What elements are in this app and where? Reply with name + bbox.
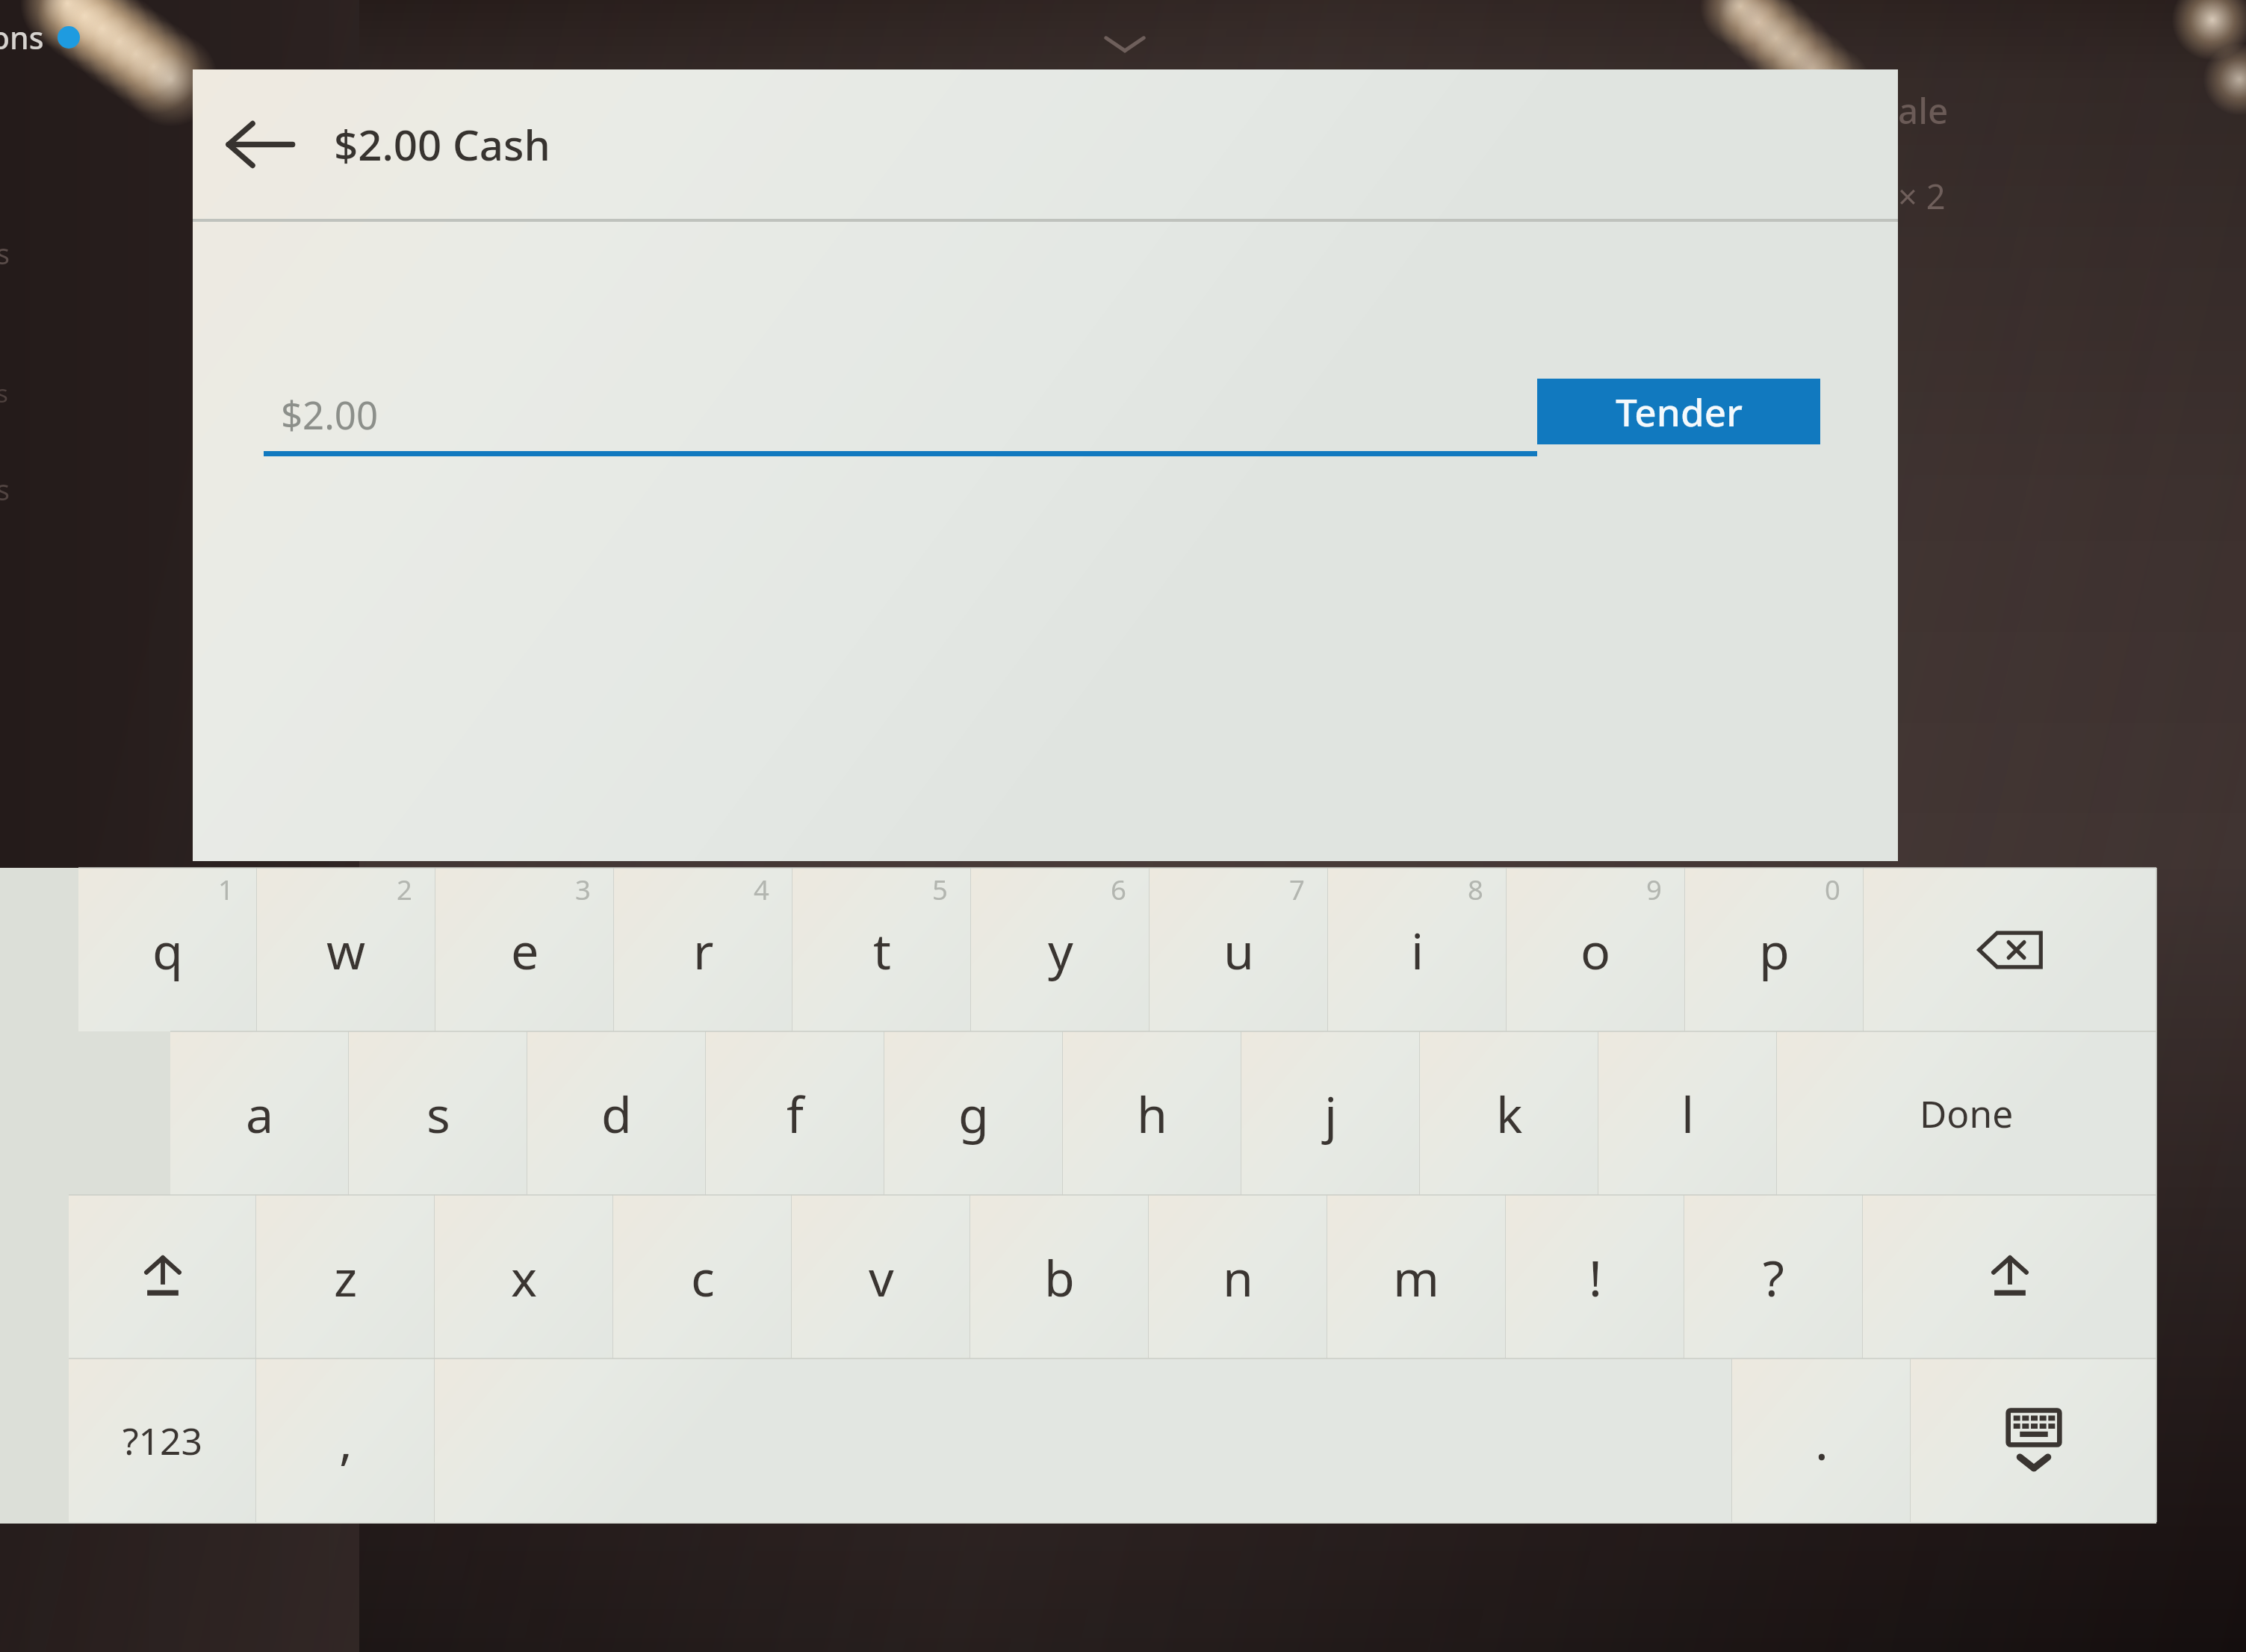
staticText: x — [511, 1243, 538, 1311]
staticText: 9 — [1646, 871, 1662, 908]
staticText: s — [0, 235, 10, 273]
button[interactable]: d — [527, 1031, 706, 1195]
button[interactable]: b — [970, 1195, 1149, 1358]
button[interactable]: Shift — [69, 1195, 256, 1358]
button[interactable]: 0 — [1685, 868, 1864, 1031]
staticText: ? — [1763, 1243, 1784, 1311]
staticText: b — [1044, 1243, 1075, 1311]
staticText: 8 — [1468, 871, 1483, 908]
staticText: r — [693, 916, 714, 984]
button[interactable]: s — [349, 1031, 527, 1195]
staticText: ?123 — [122, 1415, 202, 1466]
button[interactable]: g — [884, 1031, 1063, 1195]
button[interactable]: v — [792, 1195, 970, 1358]
staticText: 2 — [397, 871, 412, 908]
staticText: m — [1393, 1243, 1440, 1311]
button[interactable]: x — [435, 1195, 613, 1358]
button[interactable]: Done — [1777, 1031, 2156, 1195]
staticText: 5 — [932, 871, 948, 908]
button[interactable]: 5 — [792, 868, 971, 1031]
staticText: e — [511, 916, 539, 984]
staticText: d — [601, 1080, 632, 1147]
button[interactable]: ?123 — [69, 1358, 256, 1522]
staticText: Tender — [1616, 385, 1743, 438]
staticText: 3 — [575, 871, 591, 908]
staticText: v — [869, 1243, 894, 1311]
button[interactable]: Backspace — [1864, 868, 2156, 1031]
button[interactable]: n — [1149, 1195, 1327, 1358]
button[interactable]: Shift — [1863, 1195, 2156, 1358]
staticText: f — [787, 1080, 804, 1147]
button[interactable]: 6 — [971, 868, 1150, 1031]
button[interactable]: f — [706, 1031, 884, 1195]
staticText: 1 — [218, 871, 234, 908]
button[interactable]: k — [1420, 1031, 1598, 1195]
button[interactable]: h — [1063, 1031, 1241, 1195]
button[interactable]: 8 — [1328, 868, 1507, 1031]
staticText: . — [1815, 1407, 1828, 1474]
button[interactable]: z — [256, 1195, 435, 1358]
button[interactable]: , — [256, 1358, 435, 1522]
staticText: l — [1681, 1080, 1695, 1147]
button[interactable]: 4 — [614, 868, 792, 1031]
staticText: g — [958, 1080, 989, 1147]
staticText: z — [334, 1243, 358, 1311]
staticText: $2.00 — [281, 389, 379, 441]
staticText: , — [339, 1407, 353, 1474]
button[interactable]: ! — [1506, 1195, 1684, 1358]
button[interactable]: . — [1732, 1358, 1911, 1522]
staticText: y — [1048, 916, 1073, 984]
staticText: 6 — [1111, 871, 1126, 908]
button[interactable]: 1 — [78, 868, 257, 1031]
staticText: ale — [1898, 86, 1949, 134]
staticText: q — [152, 916, 183, 984]
button[interactable]: m — [1327, 1195, 1506, 1358]
button[interactable]: Tender — [1537, 379, 1820, 444]
button[interactable]: 3 — [435, 868, 614, 1031]
staticText: × 2 — [1898, 173, 1946, 220]
staticText: a — [246, 1080, 274, 1147]
staticText: i — [1411, 916, 1424, 984]
staticText: s — [0, 376, 8, 410]
staticText: Done — [1920, 1088, 2014, 1139]
staticText: ons — [0, 16, 44, 58]
staticText: t — [873, 916, 891, 984]
staticText: c — [691, 1243, 715, 1311]
staticText: s — [426, 1080, 450, 1147]
staticText: j — [1324, 1080, 1338, 1147]
button[interactable]: j — [1241, 1031, 1420, 1195]
button[interactable]: Back — [214, 101, 303, 188]
button[interactable]: l — [1598, 1031, 1777, 1195]
button[interactable]: 9 — [1507, 868, 1685, 1031]
button[interactable]: c — [613, 1195, 792, 1358]
button[interactable]: Hide keyboard — [1911, 1358, 2156, 1522]
button[interactable]: $2.00 — [264, 379, 1537, 456]
staticText: n — [1223, 1243, 1254, 1311]
staticText: ! — [1589, 1243, 1602, 1311]
button[interactable]: a — [170, 1031, 349, 1195]
button[interactable]: 7 — [1150, 868, 1328, 1031]
staticText: 4 — [754, 871, 769, 908]
staticText: u — [1223, 916, 1255, 984]
staticText: $2.00 Cash — [334, 116, 550, 173]
staticText: 0 — [1825, 871, 1840, 908]
button[interactable]: Collapse — [1091, 20, 1158, 69]
staticText: p — [1759, 916, 1790, 984]
staticText: h — [1137, 1080, 1168, 1147]
button[interactable]: ? — [1684, 1195, 1863, 1358]
staticText: w — [326, 916, 366, 984]
staticText: o — [1580, 916, 1611, 984]
button[interactable]: 2 — [257, 868, 435, 1031]
staticText: s — [0, 471, 10, 509]
staticText: k — [1496, 1080, 1523, 1147]
staticText: 7 — [1289, 871, 1305, 908]
